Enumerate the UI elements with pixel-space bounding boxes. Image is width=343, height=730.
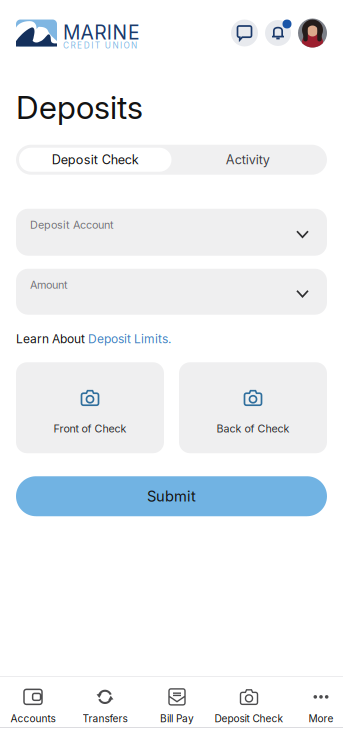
button[interactable]: Bill Pay — [141, 677, 213, 723]
button[interactable]: Deposit Check — [213, 677, 285, 723]
staticText: Deposit Check — [214, 712, 283, 725]
staticText: Amount — [30, 278, 68, 291]
button[interactable]: Front of Check — [16, 362, 164, 453]
staticText: Deposit Account — [30, 218, 114, 231]
staticText: Bill Pay — [160, 712, 194, 725]
button[interactable]: Activity — [171, 148, 324, 172]
staticText: More — [308, 712, 333, 725]
button[interactable]: Notifications — [265, 20, 291, 46]
staticText: Transfers — [82, 712, 127, 725]
staticText: Deposit Check — [52, 152, 139, 167]
staticText: Front of Check — [53, 422, 126, 435]
button[interactable]: More — [285, 677, 343, 723]
staticText: Submit — [147, 487, 196, 505]
staticText: Activity — [226, 152, 270, 167]
button[interactable]: Deposit Account — [16, 209, 327, 256]
staticText: Deposit Limits. — [88, 332, 171, 346]
staticText: Back of Check — [216, 422, 289, 435]
button[interactable]: Deposit Limits. — [88, 332, 171, 346]
button[interactable]: Transfers — [69, 677, 141, 723]
button[interactable]: Back of Check — [179, 362, 327, 453]
button[interactable]: Messages — [231, 19, 258, 46]
staticText: Accounts — [10, 712, 55, 725]
staticText: Learn About — [16, 332, 85, 346]
staticText: CREDIT UNION — [63, 40, 137, 50]
button[interactable]: Submit — [16, 476, 327, 516]
button[interactable]: Profile — [298, 18, 327, 47]
staticText: Deposits — [16, 88, 143, 127]
button[interactable]: Amount — [16, 269, 327, 315]
button[interactable]: Accounts — [0, 677, 69, 723]
staticText: MARINE — [63, 21, 140, 44]
button[interactable]: Deposit Check — [19, 148, 171, 172]
